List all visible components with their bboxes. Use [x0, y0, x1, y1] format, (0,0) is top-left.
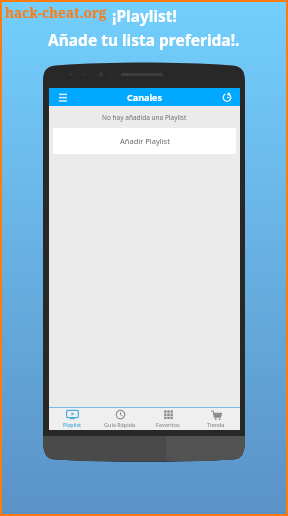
staticText: ¡Playlist! [112, 5, 177, 26]
button[interactable]: Favoritos [144, 408, 192, 430]
staticText: Añade tu lista preferida!. [48, 29, 240, 50]
button[interactable]: Tienda [192, 408, 240, 430]
staticText: No hay añadida una Playlist [102, 113, 187, 122]
button[interactable]: Añadir Playlist [53, 128, 236, 154]
staticText: Favoritos [156, 421, 180, 428]
button[interactable]: Playlist [49, 408, 96, 430]
staticText: Canales [73, 91, 216, 103]
staticText: Añadir Playlist [120, 136, 170, 146]
button[interactable]: Open navigation menu [49, 88, 73, 106]
staticText: Tienda [207, 421, 225, 428]
staticText: Playlist [63, 421, 82, 428]
button[interactable]: Timer [216, 88, 240, 106]
staticText: Guía Rápida [104, 421, 136, 428]
staticText: hack-cheat.org [5, 4, 107, 22]
button[interactable]: Guía Rápida [96, 408, 144, 430]
